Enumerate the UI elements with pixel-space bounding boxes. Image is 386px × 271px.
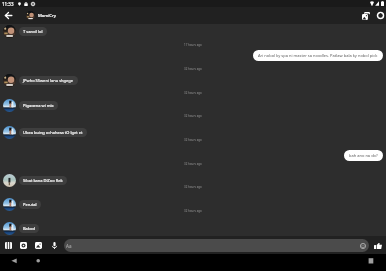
button[interactable]: Apps and more xyxy=(2,239,15,252)
button[interactable]: Emoji xyxy=(358,241,367,250)
staticText: Ari nobol ky spa ni master sa noodles. P… xyxy=(258,53,378,58)
button[interactable]: bah ano na do? xyxy=(344,150,383,161)
button[interactable]: Ari nobol ky spa ni master sa noodles. P… xyxy=(253,50,383,61)
button[interactable]: JPwho SSweni lanu shgege xyxy=(3,74,78,87)
staticText: MamiCry xyxy=(38,13,56,19)
button[interactable]: Ubea buing ochahesa tO lget et xyxy=(3,126,87,139)
staticText: 17 hours ago xyxy=(184,43,202,47)
button[interactable]: Disappearing messages xyxy=(374,9,386,22)
staticText: T sanvil lol xyxy=(23,29,43,34)
staticText: 32 hours ago xyxy=(184,114,202,118)
staticText: 32 hours ago xyxy=(184,162,202,166)
staticText: 32 hours ago xyxy=(184,91,202,95)
staticText: 32 hours ago xyxy=(184,209,202,213)
staticText: Ubea buing ochahesa tO lget et xyxy=(23,130,83,135)
button[interactable]: Voice message xyxy=(48,239,61,252)
button[interactable]: Back xyxy=(0,7,17,24)
staticText: 11:33 xyxy=(2,1,14,7)
button[interactable]: Recent apps xyxy=(362,254,380,271)
staticText: 32 hours ago xyxy=(184,67,202,71)
button[interactable]: Photos xyxy=(32,239,45,252)
button[interactable]: T sanvil lol xyxy=(3,25,47,38)
staticText: 32 hours ago xyxy=(184,138,202,142)
staticText: bah ano na do? xyxy=(349,153,378,158)
staticText: Sibat kana DiZoo Rek xyxy=(23,178,63,183)
button[interactable]: Media gallery xyxy=(359,9,372,22)
staticText: Perutal xyxy=(23,202,37,207)
staticText: Pigaoena wi mix xyxy=(23,103,54,108)
staticText: 32 hours ago xyxy=(184,185,202,189)
button[interactable]: Send like xyxy=(371,239,384,252)
staticText: Aa xyxy=(66,243,72,249)
button[interactable]: Perutal xyxy=(3,198,41,211)
button[interactable]: Home xyxy=(29,254,47,271)
button[interactable]: Pigaoena wi mix xyxy=(3,99,58,112)
button[interactable]: Camera xyxy=(17,239,30,252)
staticText: JPwho SSweni lanu shgege xyxy=(23,78,74,83)
button[interactable]: MamiCry xyxy=(26,7,56,24)
button[interactable]: Sibat kana DiZoo Rek xyxy=(3,174,67,187)
staticText: Bakod xyxy=(23,226,35,231)
button[interactable]: Bakod xyxy=(3,222,39,235)
button[interactable]: Aa xyxy=(64,239,369,252)
button[interactable]: Back xyxy=(3,254,25,271)
